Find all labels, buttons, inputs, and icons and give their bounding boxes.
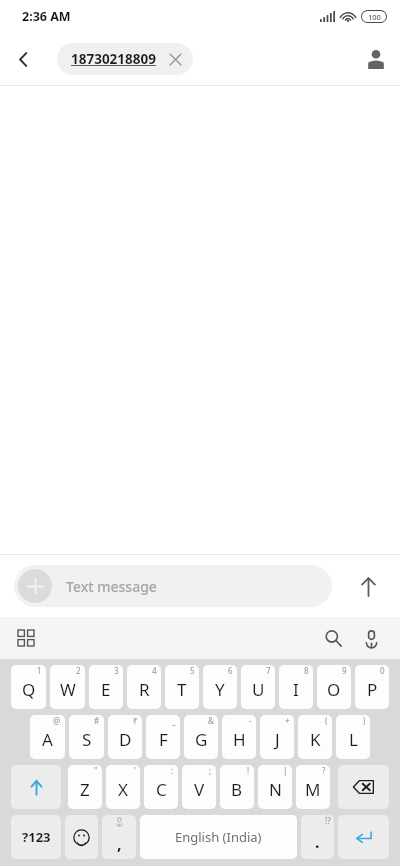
button[interactable]: 8 bbox=[279, 665, 313, 709]
button[interactable]: Enter bbox=[338, 815, 389, 859]
staticText: " bbox=[94, 765, 98, 776]
button[interactable]: | bbox=[258, 765, 292, 809]
staticText: , bbox=[117, 833, 122, 855]
button[interactable]: Voice input bbox=[352, 619, 390, 657]
button[interactable]: + bbox=[260, 715, 294, 759]
button[interactable]: ? bbox=[296, 765, 330, 809]
button[interactable]: 9 bbox=[317, 665, 351, 709]
button[interactable]: 18730218809 bbox=[57, 43, 193, 75]
staticText: ; bbox=[209, 765, 212, 776]
staticText: V bbox=[194, 778, 205, 801]
staticText: 100 bbox=[368, 12, 381, 22]
button[interactable]: ! bbox=[220, 765, 254, 809]
staticText: S bbox=[82, 728, 92, 751]
button[interactable]: " bbox=[68, 765, 102, 809]
button[interactable]: 1 bbox=[11, 665, 46, 709]
staticText: English (India) bbox=[175, 828, 262, 846]
staticText: J bbox=[275, 728, 280, 751]
button[interactable]: , bbox=[102, 815, 136, 859]
staticText: H bbox=[233, 728, 246, 751]
staticText: 4 bbox=[152, 665, 157, 676]
button[interactable]: Add attachment bbox=[14, 565, 332, 607]
button[interactable]: ) bbox=[336, 715, 370, 759]
button[interactable]: Keyboard toolbar bbox=[8, 620, 44, 656]
button[interactable]: Send bbox=[346, 564, 390, 608]
button[interactable]: & bbox=[184, 715, 218, 759]
staticText: X bbox=[118, 778, 128, 801]
button[interactable]: Contact details bbox=[352, 35, 400, 83]
staticText: A bbox=[42, 728, 53, 751]
staticText: L bbox=[349, 728, 358, 751]
button[interactable]: - bbox=[222, 715, 256, 759]
button[interactable]: _ bbox=[146, 715, 180, 759]
staticText: Text message bbox=[66, 577, 157, 596]
button[interactable]: @ bbox=[30, 715, 65, 759]
button[interactable]: English (India) bbox=[140, 815, 297, 859]
staticText: + bbox=[285, 715, 290, 726]
button[interactable]: 0 bbox=[355, 665, 389, 709]
staticText: P bbox=[367, 678, 378, 701]
staticText: R bbox=[139, 678, 150, 701]
staticText: ( bbox=[325, 715, 328, 726]
staticText: Y bbox=[215, 678, 225, 701]
staticText: 7 bbox=[266, 665, 271, 676]
button[interactable]: : bbox=[144, 765, 178, 809]
button[interactable]: ( bbox=[298, 715, 332, 759]
staticText: 5 bbox=[190, 665, 195, 676]
staticText: 18730218809 bbox=[71, 50, 156, 68]
staticText: ) bbox=[363, 715, 366, 726]
staticText: U bbox=[252, 678, 265, 701]
button[interactable]: Shift bbox=[11, 765, 61, 809]
staticText: 1 bbox=[37, 665, 42, 676]
button[interactable]: Emoji bbox=[65, 815, 98, 859]
staticText: G bbox=[195, 728, 208, 751]
button[interactable]: !? bbox=[301, 815, 334, 859]
button[interactable]: 5 bbox=[165, 665, 199, 709]
staticText: 2 bbox=[76, 665, 81, 676]
button[interactable]: Add attachment bbox=[18, 569, 52, 603]
staticText: I bbox=[293, 678, 299, 701]
staticText: ? bbox=[322, 765, 326, 776]
button[interactable]: Back bbox=[0, 36, 46, 82]
staticText: Z bbox=[80, 778, 90, 801]
staticText: # bbox=[94, 715, 100, 726]
staticText: K bbox=[310, 728, 321, 751]
button[interactable]: 6 bbox=[203, 665, 237, 709]
staticText: D bbox=[119, 728, 132, 751]
button[interactable]: ' bbox=[106, 765, 140, 809]
staticText: ' bbox=[134, 765, 136, 776]
button[interactable]: 4 bbox=[127, 665, 161, 709]
staticText: | bbox=[283, 765, 288, 776]
staticText: @ bbox=[53, 715, 61, 726]
staticText: 3 bbox=[114, 665, 119, 676]
staticText: 9 bbox=[342, 665, 347, 676]
button[interactable]: # bbox=[69, 715, 104, 759]
staticText: E bbox=[101, 678, 111, 701]
staticText: Q bbox=[22, 678, 36, 701]
button[interactable]: ; bbox=[182, 765, 216, 809]
button[interactable]: ₹ bbox=[108, 715, 142, 759]
staticText: C bbox=[156, 778, 167, 801]
button[interactable]: 7 bbox=[241, 665, 275, 709]
staticText: 2:36 AM bbox=[22, 8, 71, 25]
button[interactable]: Backspace bbox=[338, 765, 389, 809]
staticText: 6 bbox=[228, 665, 233, 676]
staticText: 0 bbox=[380, 665, 385, 676]
staticText: M bbox=[305, 778, 321, 801]
staticText: !? bbox=[325, 815, 331, 826]
staticText: B bbox=[231, 778, 243, 801]
button[interactable]: Remove recipient bbox=[165, 49, 185, 69]
staticText: ₹ bbox=[133, 715, 138, 726]
staticText: : bbox=[171, 765, 174, 776]
button[interactable]: 2 bbox=[50, 665, 85, 709]
staticText: F bbox=[159, 728, 168, 751]
staticText: _ bbox=[172, 715, 176, 726]
button[interactable]: 3 bbox=[89, 665, 123, 709]
button[interactable]: ?123 bbox=[11, 815, 61, 859]
staticText: & bbox=[208, 715, 214, 726]
button[interactable]: Search bbox=[314, 619, 352, 657]
staticText: W bbox=[60, 678, 76, 701]
staticText: . bbox=[315, 831, 320, 853]
staticText: T bbox=[177, 678, 187, 701]
staticText: ! bbox=[247, 765, 250, 776]
